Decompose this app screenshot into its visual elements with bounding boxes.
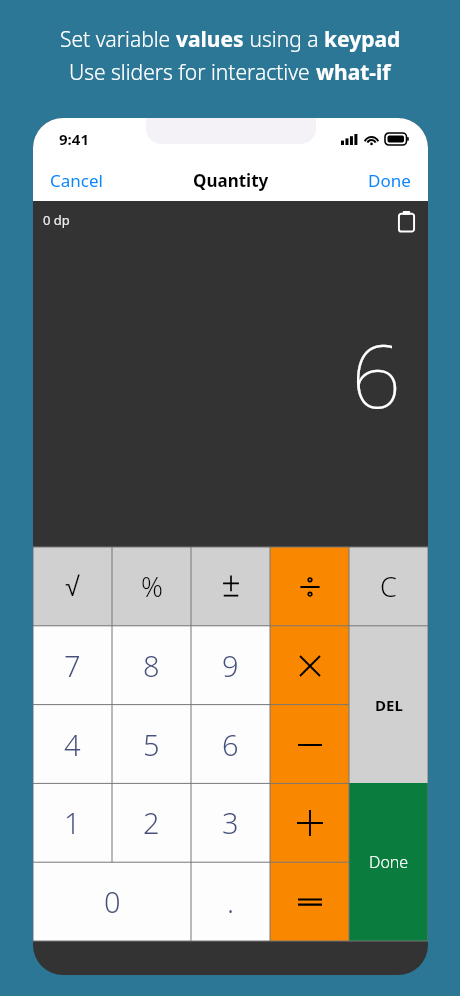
button[interactable]: Done: [349, 783, 428, 941]
staticText: 0: [104, 882, 121, 921]
button[interactable]: Minus: [270, 705, 349, 784]
staticText: Done: [369, 851, 409, 873]
button[interactable]: Divide: [270, 547, 349, 626]
button[interactable]: 7: [33, 626, 112, 705]
staticText: Cancel: [50, 169, 103, 192]
staticText: DEL: [375, 695, 403, 715]
staticText: %: [141, 568, 163, 605]
button[interactable]: 4: [33, 705, 112, 784]
staticText: 1: [64, 803, 81, 842]
staticText: 0 dp: [43, 211, 70, 229]
button[interactable]: C: [349, 547, 428, 626]
staticText: Use sliders for interactive: [69, 58, 316, 87]
staticText: 9:41: [59, 129, 89, 149]
staticText: Quantity: [193, 169, 269, 192]
staticText: values: [176, 25, 244, 54]
staticText: .: [227, 882, 235, 921]
button[interactable]: Equals: [270, 862, 349, 941]
button[interactable]: √: [33, 547, 112, 626]
button[interactable]: 6: [191, 705, 270, 784]
staticText: what-if: [316, 58, 391, 87]
button[interactable]: 2: [112, 783, 191, 862]
button[interactable]: 5: [112, 705, 191, 784]
staticText: Set variable: [60, 25, 176, 54]
button[interactable]: Plus minus: [191, 547, 270, 626]
button[interactable]: .: [191, 862, 270, 941]
button[interactable]: Multiply: [270, 626, 349, 705]
button[interactable]: 1: [33, 783, 112, 862]
staticText: using a: [244, 25, 324, 54]
button[interactable]: Paste from clipboard: [393, 206, 420, 237]
staticText: 9: [222, 646, 239, 685]
button[interactable]: 0: [33, 862, 191, 941]
staticText: Done: [368, 169, 411, 192]
staticText: 6: [222, 725, 239, 764]
staticText: 7: [64, 646, 81, 685]
staticText: √: [65, 572, 80, 602]
staticText: 3: [222, 803, 239, 842]
button[interactable]: Plus: [270, 783, 349, 862]
button[interactable]: Done: [351, 160, 428, 201]
button[interactable]: DEL: [349, 626, 428, 784]
button[interactable]: 9: [191, 626, 270, 705]
button[interactable]: 3: [191, 783, 270, 862]
staticText: 8: [143, 646, 160, 685]
staticText: 6: [351, 314, 402, 434]
staticText: keypad: [324, 25, 401, 54]
staticText: 5: [143, 725, 160, 764]
staticText: 2: [143, 803, 160, 842]
button[interactable]: 8: [112, 626, 191, 705]
staticText: 4: [64, 725, 81, 764]
button[interactable]: %: [112, 547, 191, 626]
staticText: C: [380, 568, 397, 605]
button[interactable]: Cancel: [33, 160, 120, 201]
